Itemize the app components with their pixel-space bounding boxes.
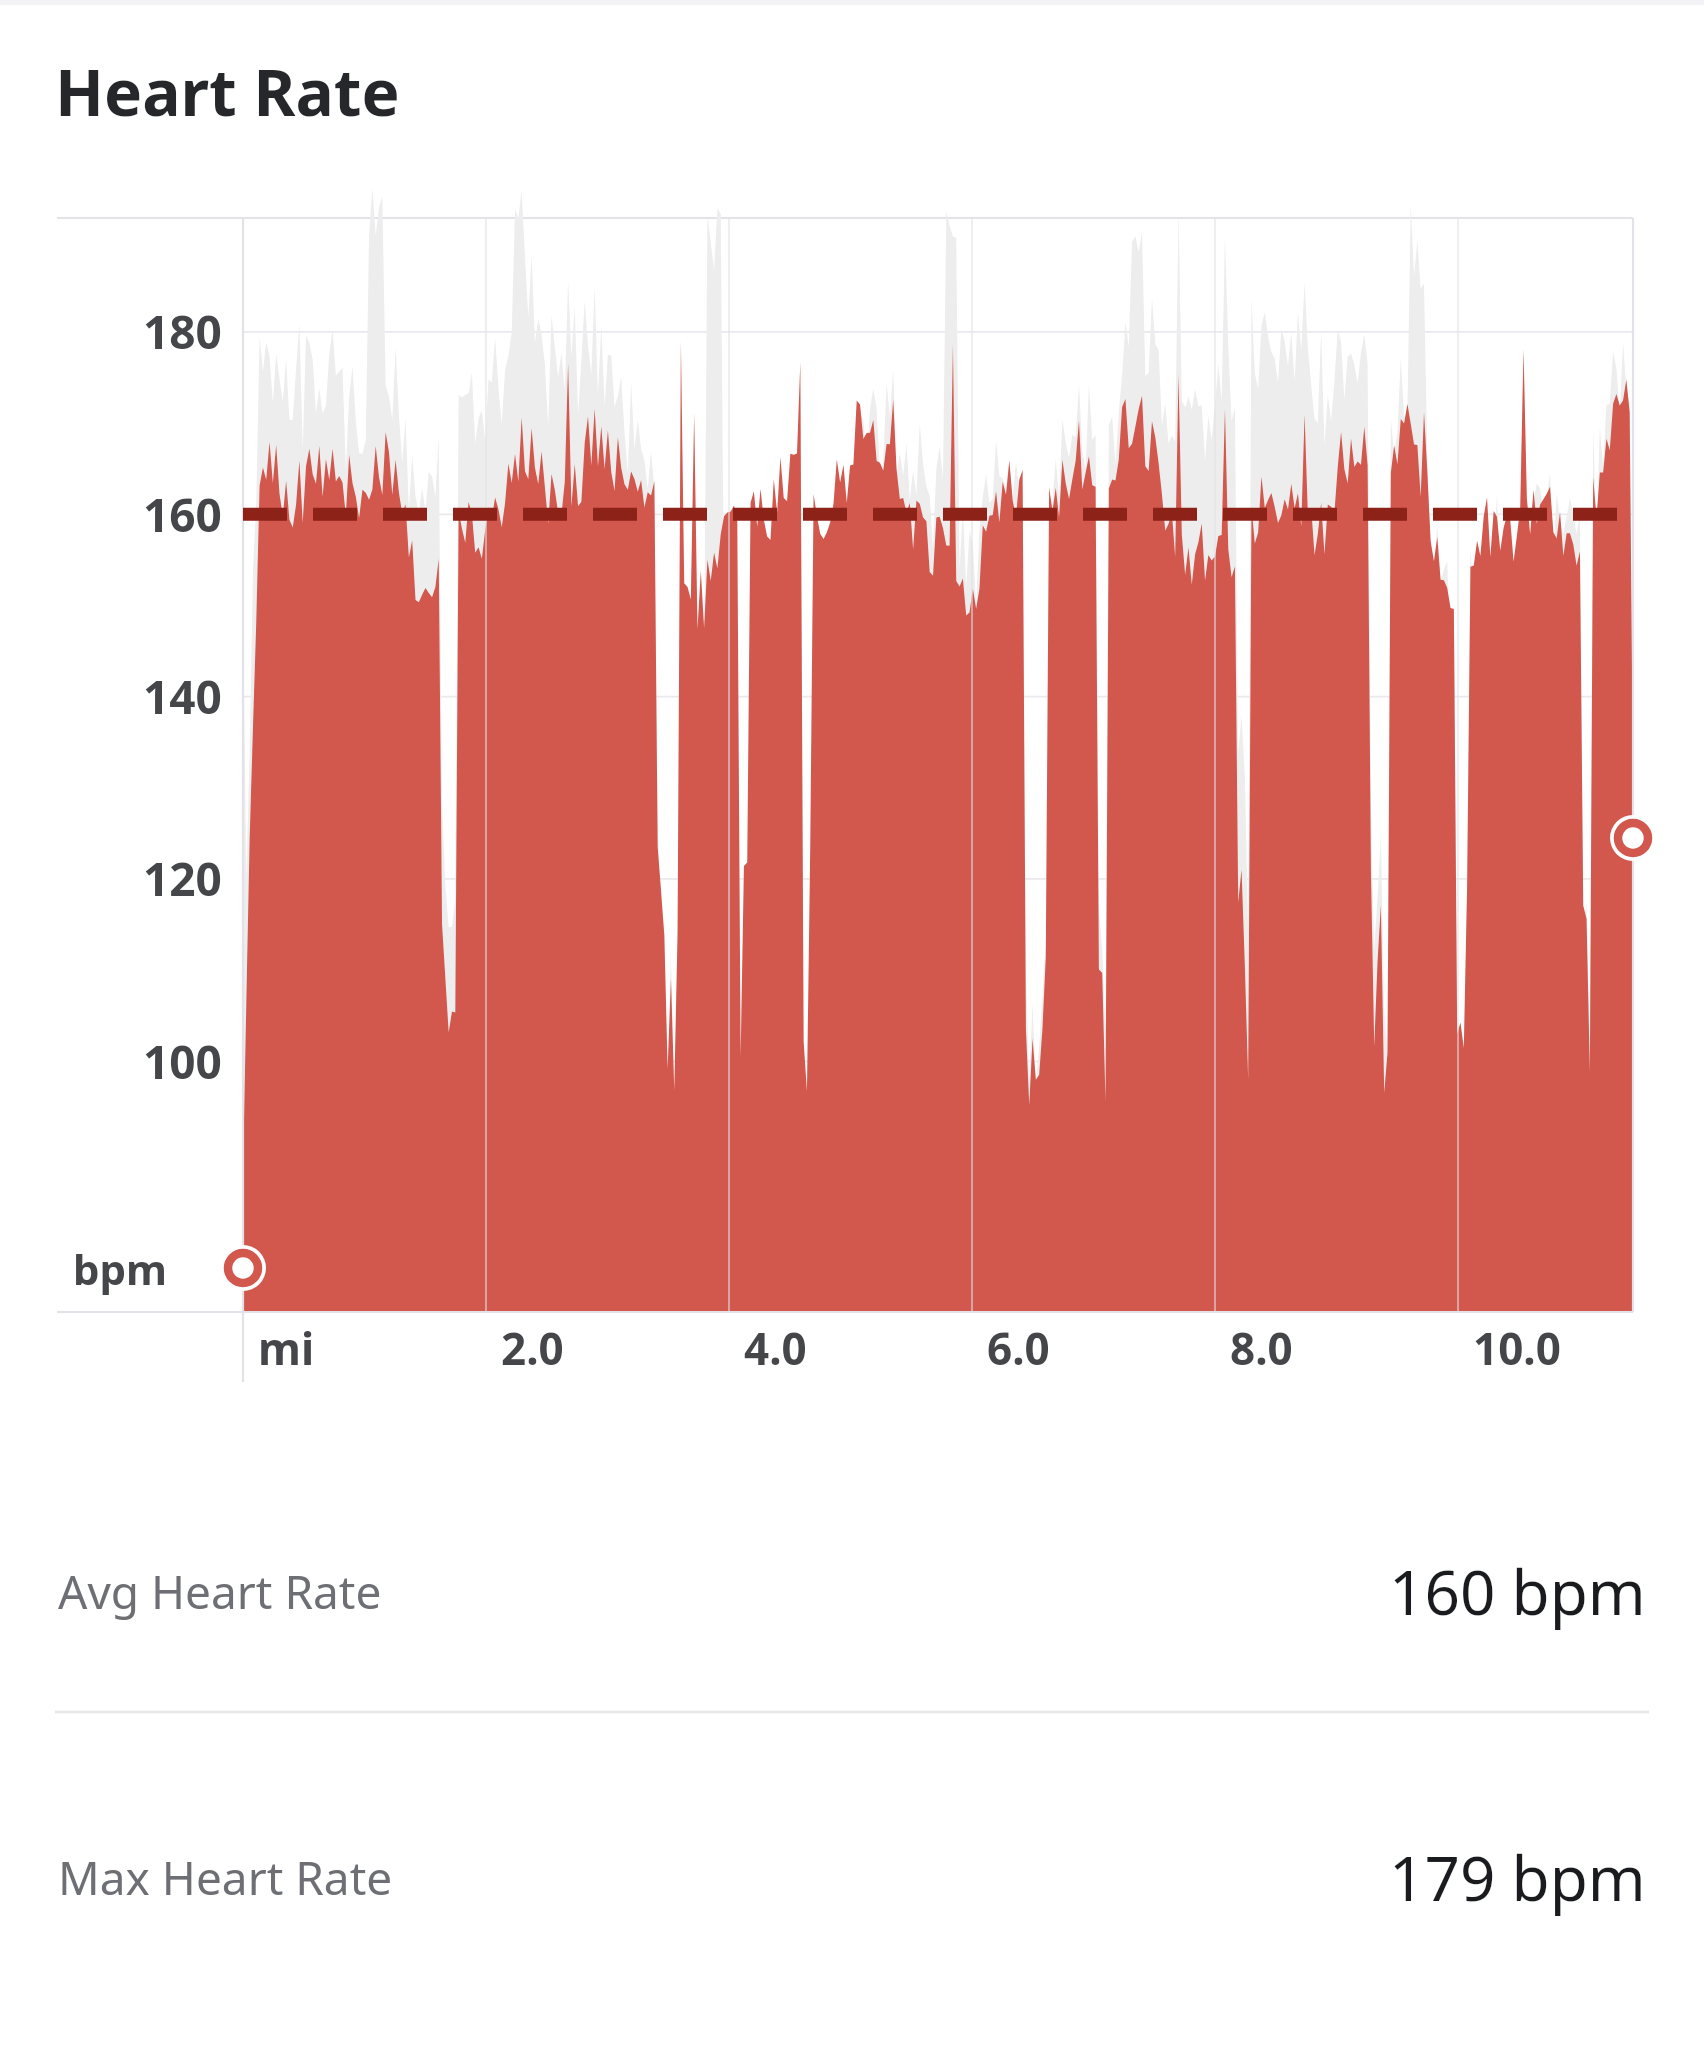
staticText: Heart Rate [55,48,400,135]
staticText: 140 [143,665,222,728]
staticText: mi [258,1318,315,1378]
button[interactable]: Average heart rate 160 bpm [0,1470,1704,1712]
staticText: bpm [73,1240,168,1297]
staticText: 2.0 [501,1318,564,1378]
staticText: 160 bpm [1389,1549,1646,1633]
staticText: 100 [143,1030,222,1093]
staticText: 160 [143,483,222,546]
staticText: 6.0 [987,1318,1050,1378]
staticText: 8.0 [1230,1318,1293,1378]
staticText: 180 [143,300,222,363]
staticText: Avg Heart Rate [58,1560,382,1623]
staticText: 10.0 [1473,1318,1561,1378]
staticText: 179 bpm [1389,1835,1646,1919]
button[interactable]: Maximum heart rate 179 bpm [0,1714,1704,1956]
staticText: 120 [143,847,222,910]
staticText: 4.0 [744,1318,807,1378]
staticText: Max Heart Rate [58,1846,393,1909]
